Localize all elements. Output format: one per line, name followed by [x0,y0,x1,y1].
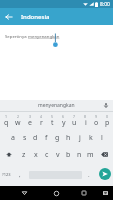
staticText: n [77,150,82,160]
button[interactable]: Home [46,186,66,200]
staticText: g [55,133,60,143]
staticText: q [4,118,9,128]
button[interactable]: d [30,129,41,146]
button[interactable]: a [7,129,19,146]
staticText: i [85,118,87,128]
staticText: 2 [17,114,20,119]
staticText: f [45,133,48,143]
button[interactable]: g [52,129,63,146]
staticText: . [88,171,90,179]
button[interactable]: f [41,129,52,146]
staticText: m [87,150,94,160]
button[interactable]: c [41,146,52,163]
staticText: 3 [29,114,32,119]
button[interactable]: 3 [24,112,36,129]
button[interactable]: v [52,146,63,163]
staticText: h [66,133,71,143]
button[interactable]: Back [14,186,34,200]
staticText: c [45,150,49,160]
staticText: l [101,133,103,143]
button[interactable]: h [63,129,74,146]
button[interactable]: j [74,129,85,146]
staticText: 4 [40,114,43,119]
button[interactable]: , [14,167,26,182]
button[interactable]: 5 [47,112,58,129]
button[interactable]: l [96,129,107,146]
staticText: o [94,118,99,128]
staticText: 6 [62,114,65,119]
button[interactable]: z [18,146,30,163]
staticText: k [89,133,93,143]
staticText: s [23,133,27,143]
button[interactable]: Send [99,168,111,180]
button[interactable]: 2 [12,112,24,129]
staticText: 8 [84,114,87,119]
staticText: menyenangkan [38,102,75,109]
staticText: menyenangkan [28,33,60,39]
button[interactable]: b [63,146,74,163]
staticText: d [33,133,38,143]
button[interactable]: 0 [102,112,113,129]
staticText: v [56,150,60,160]
staticText: j [79,133,81,143]
button[interactable]: n [74,146,85,163]
staticText: 5 [51,114,54,119]
button[interactable]: s [19,129,30,146]
button[interactable]: Delete [96,146,113,163]
button[interactable]: 7 [69,112,80,129]
staticText: r [40,118,43,128]
button[interactable]: 6 [58,112,69,129]
button[interactable]: Switch keyboard [97,186,113,200]
staticText: z [22,150,26,160]
staticText: Sepertinya [5,33,28,39]
staticText: 8:00 [100,1,110,8]
staticText: x [34,150,38,160]
button[interactable]: m [85,146,96,163]
staticText: t [51,118,54,128]
button[interactable]: . [84,167,94,182]
button[interactable]: Recent apps [74,186,94,200]
staticText: p [105,118,110,128]
staticText: 0 [106,114,109,119]
button[interactable]: Voice input [102,101,110,109]
button[interactable]: 9 [91,112,102,129]
staticText: 1 [5,114,8,119]
button[interactable]: Shift [0,146,18,163]
button[interactable]: 4 [36,112,47,129]
staticText: u [72,118,77,128]
staticText: 9 [95,114,98,119]
button[interactable]: ?123 [0,167,12,182]
staticText: w [15,118,21,128]
staticText: 7 [73,114,76,119]
staticText: ?123 [2,172,11,177]
button[interactable]: 1 [0,112,12,129]
button[interactable]: x [30,146,41,163]
staticText: a [11,133,15,143]
staticText: Indonesia [21,13,50,21]
button[interactable]: Navigate up [0,8,17,25]
staticText: b [66,150,71,160]
staticText: y [62,118,66,128]
button[interactable]: k [85,129,96,146]
staticText: e [28,118,32,128]
staticText: , [19,171,21,179]
button[interactable]: 8 [80,112,91,129]
